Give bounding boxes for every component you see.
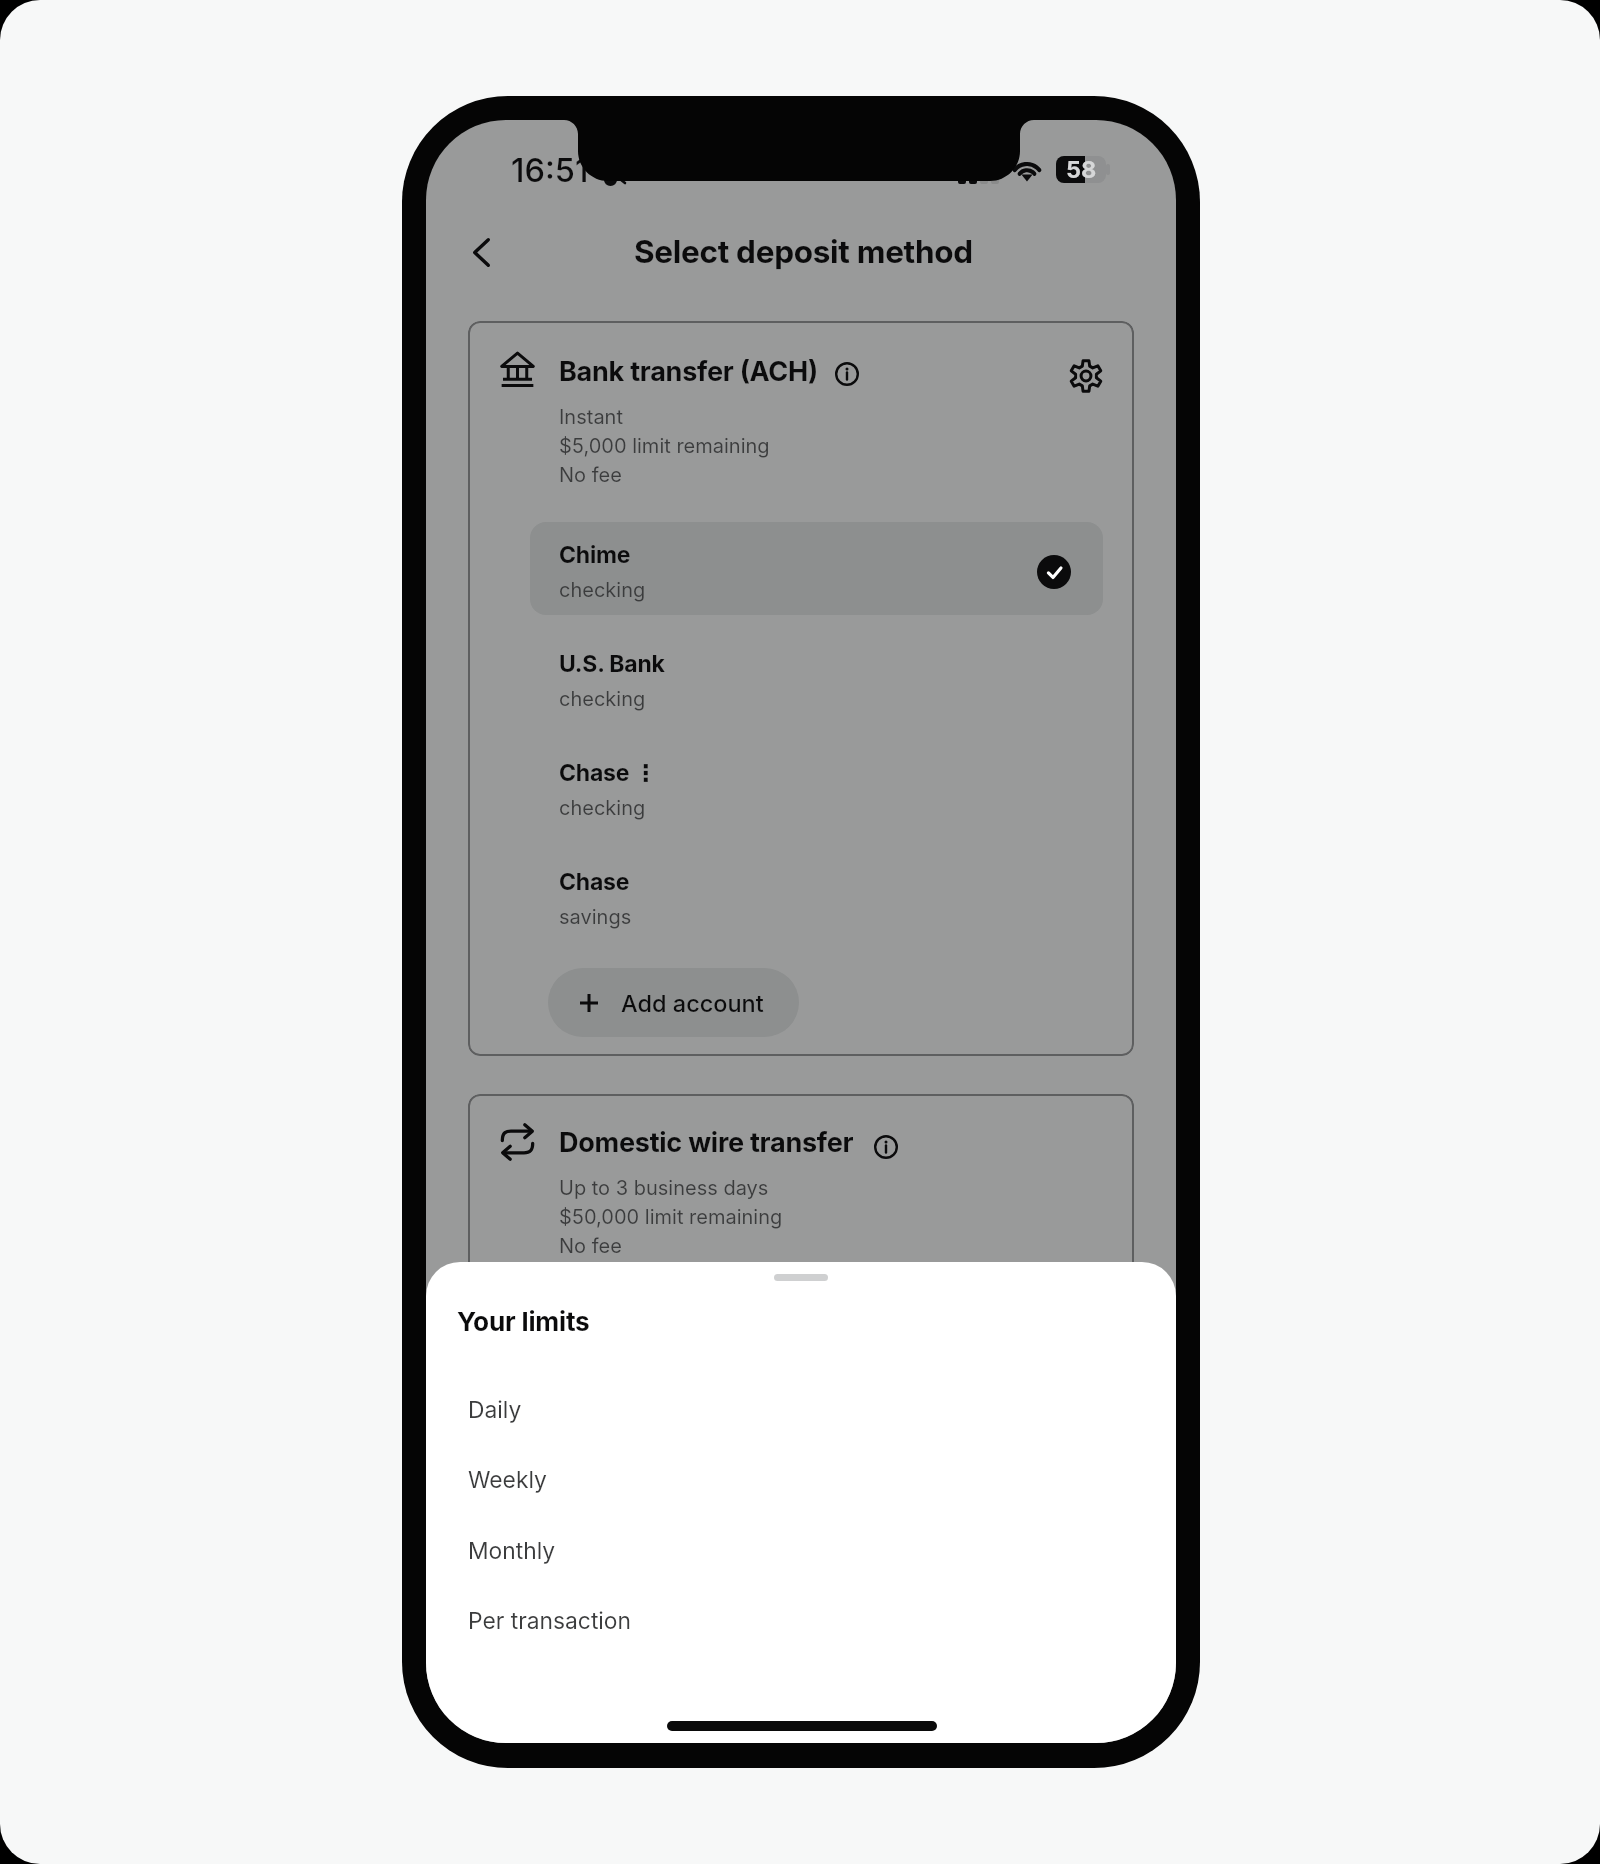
staticText: Daily [468,1396,522,1424]
staticText: No fee [559,463,622,487]
staticText: Weekly [468,1466,547,1494]
button[interactable]: Chime [530,522,1103,615]
staticText: Bank transfer (ACH) [559,355,818,388]
staticText: checking [559,796,646,820]
staticText: Add account [621,989,764,1017]
staticText: checking [559,687,646,711]
staticText: Monthly [468,1537,556,1565]
staticText: Chime [559,541,631,569]
button[interactable]: Add account [548,968,799,1037]
staticText: savings [559,905,632,929]
button[interactable]: Weekly [426,1448,1176,1518]
button[interactable]: Settings [1058,348,1113,403]
button[interactable]: Chase ⋮ [530,740,1103,833]
button[interactable]: Info [868,1129,904,1165]
button[interactable]: Chase [530,849,1103,942]
staticText: No fee [559,1234,622,1258]
staticText: Your limits [457,1306,590,1338]
button[interactable]: Daily [426,1378,1176,1448]
staticText: checking [559,578,646,602]
staticText: $50,000 limit remaining [559,1205,783,1229]
button[interactable]: Back [451,222,511,282]
staticText: U.S. Bank [559,650,665,678]
staticText: $5,000 limit remaining [559,434,770,458]
button[interactable]: Info [829,356,865,392]
staticText: 16:51 [511,151,589,190]
staticText: Select deposit method [634,232,973,270]
staticText: Per transaction [468,1607,632,1635]
button[interactable]: Monthly [426,1519,1176,1589]
staticText: Instant [559,405,623,429]
staticText: 58 [1066,155,1097,182]
staticText: Domestic wire transfer [559,1126,854,1159]
staticText: Chase [559,868,630,896]
button[interactable]: Per transaction [426,1589,1176,1659]
button[interactable]: U.S. Bank [530,631,1103,724]
staticText: Up to 3 business days [559,1176,769,1200]
staticText: Chase ⋮ [559,759,658,787]
